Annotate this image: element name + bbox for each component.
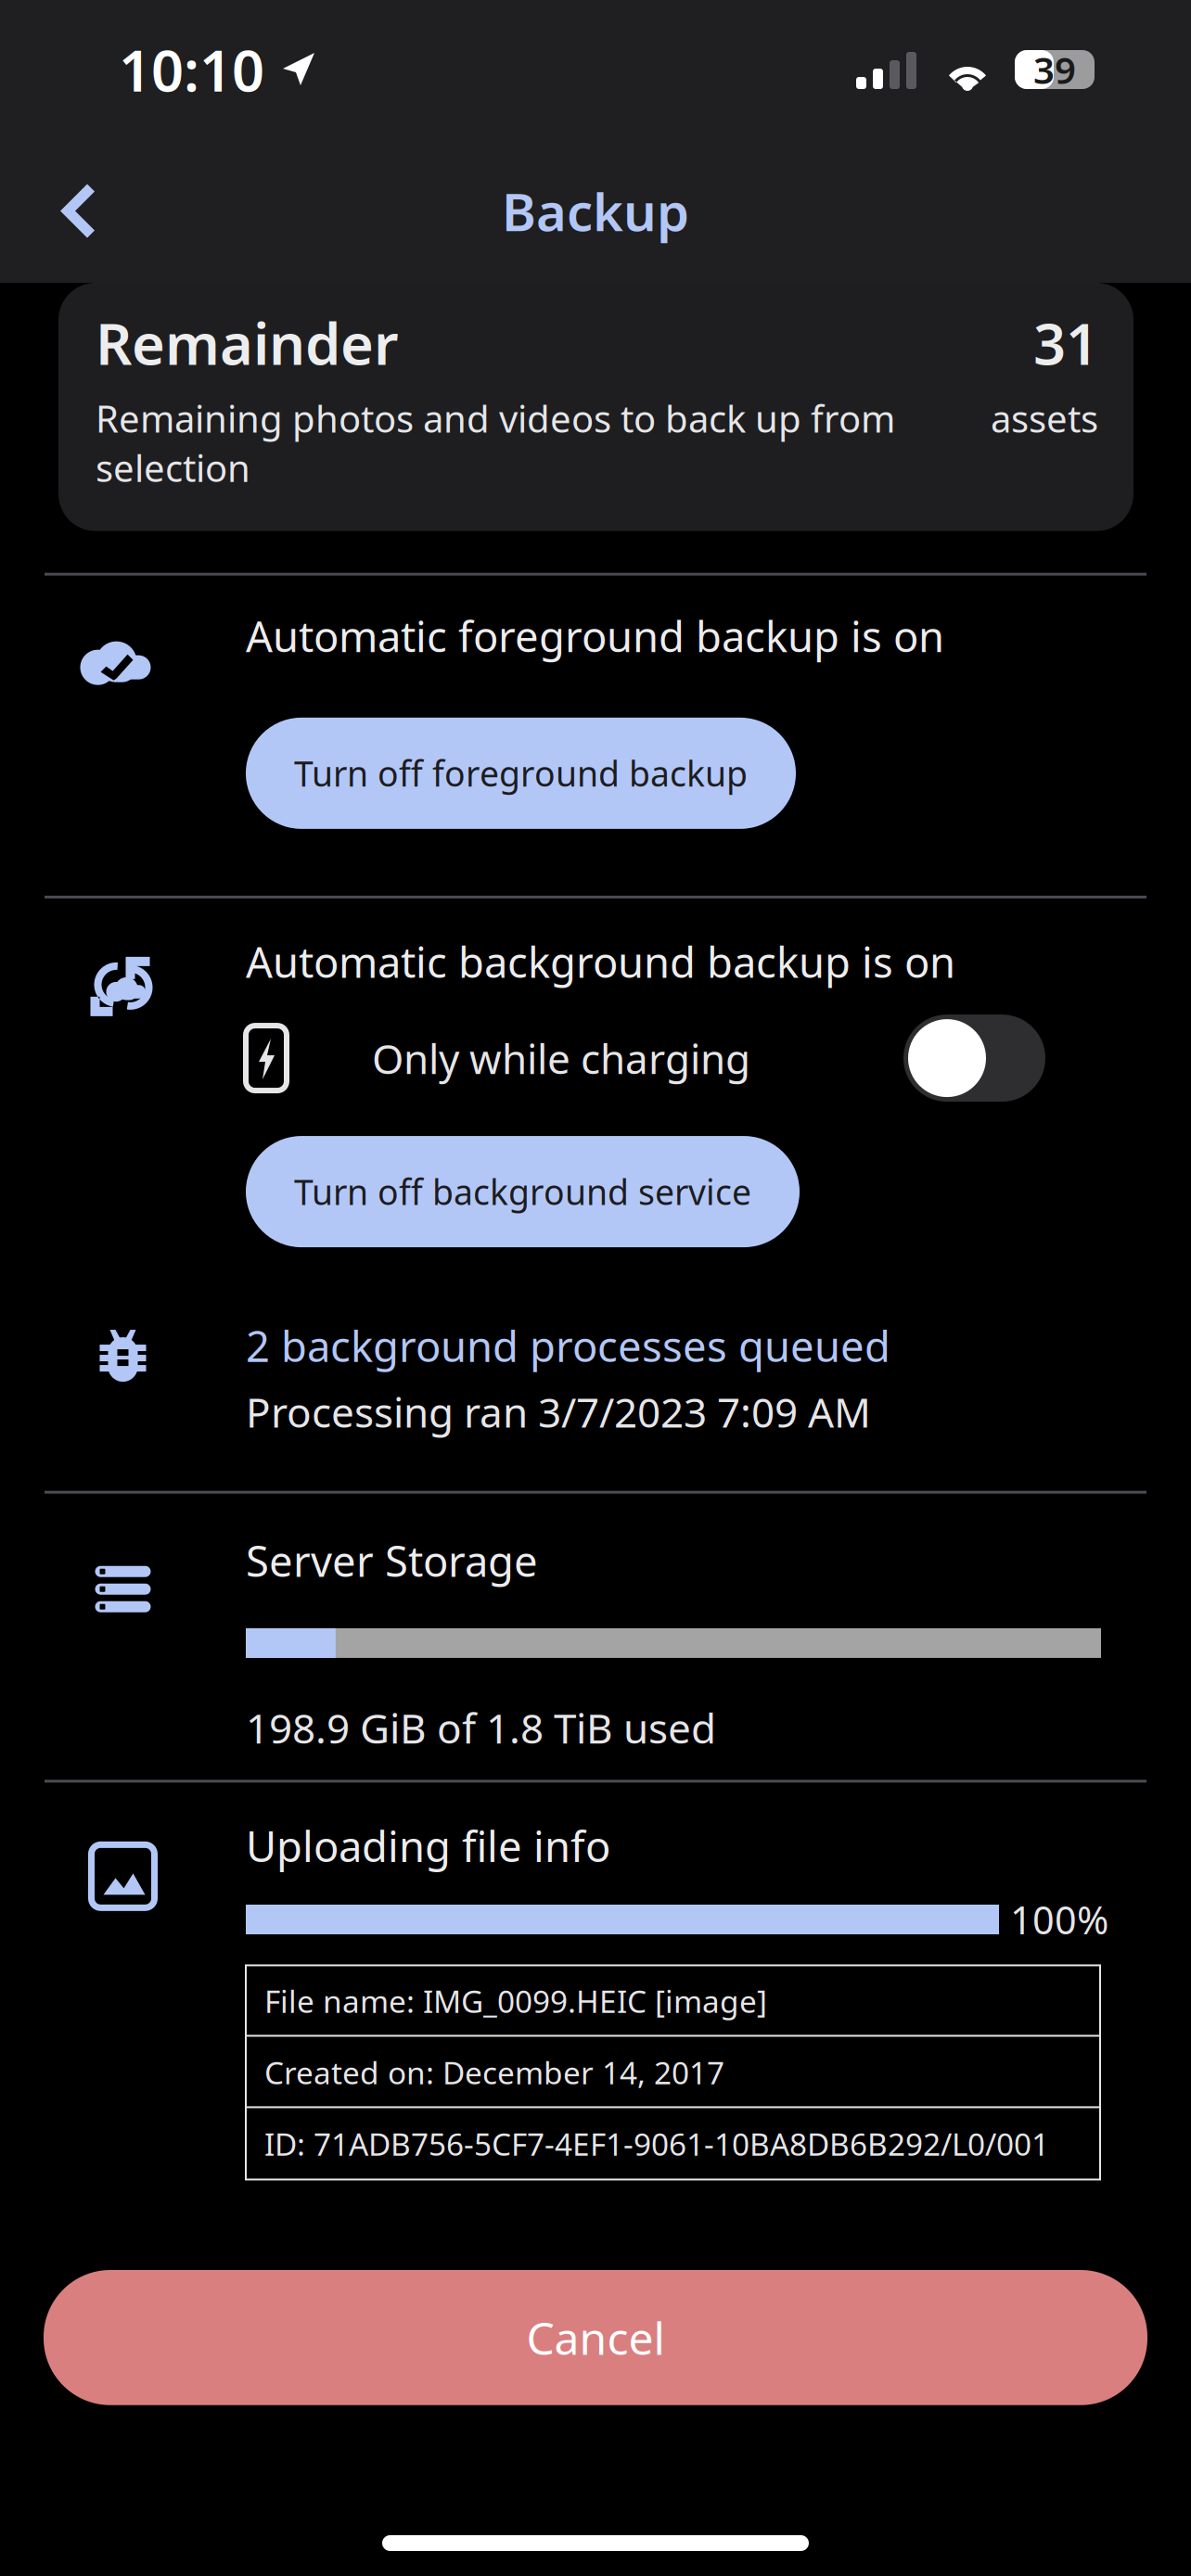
staticText: File name: IMG_0099.HEIC [image] — [264, 1980, 767, 2022]
staticText: 2 background processes queued — [246, 1318, 890, 1374]
staticText: 31 — [1033, 305, 1098, 381]
button[interactable]: Turn off foreground backup — [246, 718, 796, 829]
staticText: Turn off foreground backup — [294, 750, 748, 796]
staticText: Automatic background backup is on — [246, 934, 955, 990]
staticText: Processing ran 3/7/2023 7:09 AM — [246, 1385, 871, 1439]
staticText: 198.9 GiB of 1.8 TiB used — [246, 1701, 716, 1755]
staticText: Turn off background service — [294, 1169, 751, 1215]
staticText: 100% — [1010, 1894, 1108, 1945]
staticText: Backup — [502, 176, 689, 245]
staticText: Server Storage — [246, 1533, 538, 1588]
staticText: Automatic foreground backup is on — [246, 608, 944, 664]
staticText: Remainder — [96, 305, 399, 381]
staticText: Remaining photos and videos to back up f… — [96, 394, 895, 492]
staticText: Created on: December 14, 2017 — [264, 2052, 724, 2093]
staticText: Uploading file info — [246, 1818, 610, 1874]
button[interactable]: Cancel — [44, 2270, 1147, 2405]
staticText: ID: 71ADB756-5CF7-4EF1-9061-10BA8DB6B292… — [264, 2123, 1049, 2164]
staticText: assets — [991, 394, 1098, 443]
staticText: 39 — [1033, 45, 1076, 94]
staticText: 10:10 — [119, 32, 264, 107]
button[interactable]: Only while charging — [903, 1015, 1045, 1102]
button[interactable]: Turn off background service — [246, 1136, 800, 1247]
staticText: Only while charging — [372, 1031, 750, 1085]
button[interactable]: Back — [30, 157, 126, 265]
staticText: Cancel — [526, 2308, 665, 2367]
